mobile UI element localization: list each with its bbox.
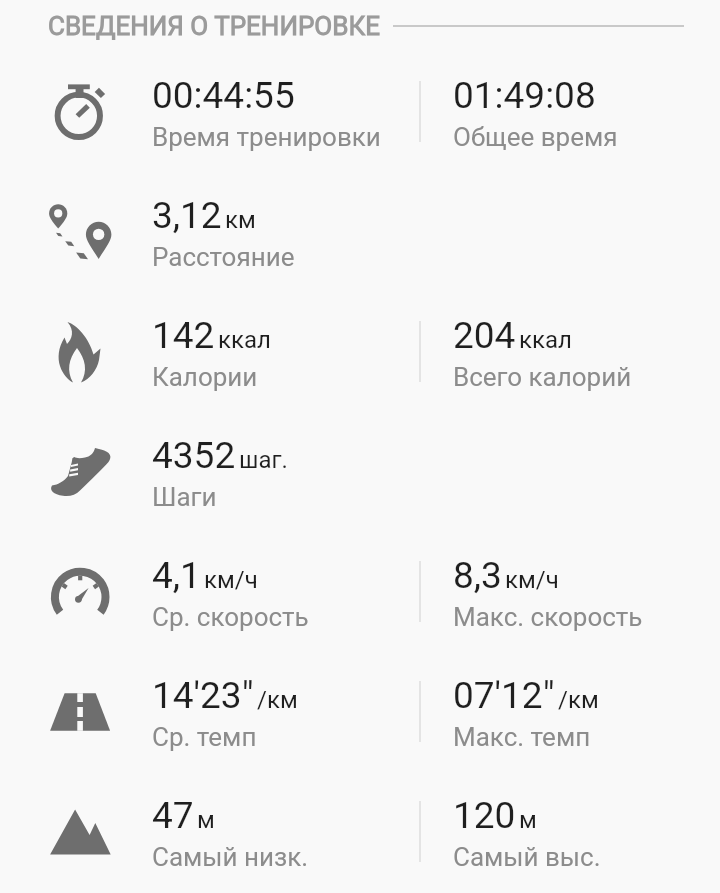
staticText: 3,12 [152,194,222,237]
staticText: шаг. [239,446,288,474]
staticText: км/ч [505,566,559,594]
staticText: ккал [218,326,271,354]
other: Самый низк. [44,786,124,876]
button[interactable]: Время тренировки [0,52,720,172]
staticText: Расстояние [152,242,295,272]
staticText: 07'12" [453,674,555,717]
staticText: Время тренировки [152,122,381,152]
staticText: Шаги [152,482,217,512]
staticText: ккал [519,326,572,354]
other: Шаги [44,426,124,516]
button[interactable]: Самый низк. [0,772,720,892]
other: Ср. темп [44,666,124,756]
staticText: 14'23" [152,674,254,717]
button[interactable]: Калории [0,292,720,412]
staticText: 47 [152,794,194,837]
staticText: Всего калорий [453,362,632,392]
staticText: /км [558,686,599,714]
staticText: 204 [453,314,516,357]
staticText: км [225,206,256,234]
other: Расстояние [44,186,124,276]
staticText: 4,1 [152,554,201,597]
button[interactable]: Шаги [0,412,720,532]
staticText: 142 [152,314,215,357]
staticText: Макс. скорость [453,602,643,632]
staticText: Калории [152,362,258,392]
staticText: м [197,806,215,834]
other: Ср. скорость [44,546,124,636]
staticText: Самый низк. [152,842,309,872]
staticText: 8,3 [453,554,502,597]
staticText: Самый выс. [453,842,601,872]
staticText: 00:44:55 [152,74,295,117]
staticText: м [519,806,537,834]
staticText: Общее время [453,122,618,152]
button[interactable]: Ср. скорость [0,532,720,652]
staticText: Ср. темп [152,722,257,752]
staticText: км/ч [204,566,258,594]
staticText: 4352 [152,434,236,477]
staticText: Ср. скорость [152,602,309,632]
other: Время тренировки [44,66,124,156]
staticText: СВЕДЕНИЯ О ТРЕНИРОВКЕ [48,11,380,41]
staticText: 01:49:08 [453,74,596,117]
button[interactable]: Ср. темп [0,652,720,772]
staticText: Макс. темп [453,722,591,752]
staticText: 120 [453,794,516,837]
other: Калории [44,306,124,396]
button[interactable]: Расстояние [0,172,720,292]
staticText: /км [257,686,298,714]
